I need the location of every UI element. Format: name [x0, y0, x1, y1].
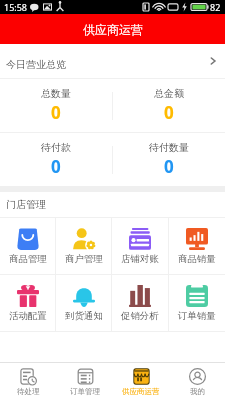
- staticText: 0: [51, 155, 61, 178]
- button[interactable]: 总数量: [0, 79, 112, 132]
- staticText: 商品管理: [9, 253, 47, 265]
- staticText: 活动配置: [9, 310, 47, 322]
- staticText: 待付数量: [149, 141, 189, 154]
- staticText: 商品销量: [178, 253, 216, 265]
- staticText: 今日营业总览: [6, 58, 66, 71]
- button[interactable]: 活动配置: [0, 275, 55, 331]
- staticText: 供应商运营: [122, 387, 160, 396]
- staticText: 0: [51, 101, 61, 124]
- button[interactable]: 供应商运营: [113, 363, 169, 400]
- button[interactable]: 待付款: [0, 133, 112, 186]
- button[interactable]: 待处理: [0, 363, 57, 400]
- staticText: 促销分析: [121, 310, 159, 322]
- button[interactable]: 到货通知: [56, 275, 111, 331]
- button[interactable]: 订单销量: [169, 275, 225, 331]
- staticText: 商户管理: [65, 253, 103, 265]
- staticText: 0: [164, 155, 174, 178]
- staticText: 到货通知: [65, 310, 103, 322]
- button[interactable]: 今日营业总览: [0, 44, 225, 78]
- button[interactable]: 促销分析: [112, 275, 168, 331]
- staticText: 我的: [190, 387, 205, 396]
- button[interactable]: 商品销量: [169, 218, 225, 274]
- staticText: 待处理: [17, 387, 40, 396]
- staticText: 订单管理: [70, 387, 100, 396]
- staticText: 店铺对账: [121, 253, 159, 265]
- staticText: 订单销量: [178, 310, 216, 322]
- staticText: 15:58: [4, 1, 28, 13]
- button[interactable]: 我的: [169, 363, 225, 400]
- staticText: 0: [164, 101, 174, 124]
- staticText: 待付款: [41, 141, 71, 154]
- button[interactable]: 待付数量: [113, 133, 225, 186]
- staticText: 总数量: [41, 87, 71, 100]
- staticText: 82: [210, 1, 221, 13]
- staticText: 总金额: [154, 87, 184, 100]
- button[interactable]: 店铺对账: [112, 218, 168, 274]
- other: 查看详情: [207, 55, 219, 67]
- staticText: 门店管理: [6, 198, 46, 211]
- button[interactable]: 订单管理: [57, 363, 113, 400]
- staticText: 供应商运营: [83, 22, 143, 37]
- button[interactable]: 商品管理: [0, 218, 55, 274]
- button[interactable]: 总金额: [113, 79, 225, 132]
- button[interactable]: 商户管理: [56, 218, 111, 274]
